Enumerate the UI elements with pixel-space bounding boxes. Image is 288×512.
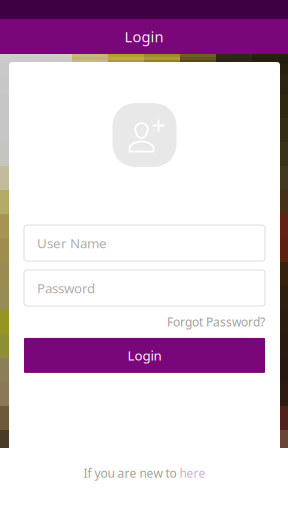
staticText: Login: [127, 347, 161, 364]
staticText: here: [179, 465, 205, 481]
staticText: Login: [124, 27, 163, 46]
staticText: Forgot Password?: [167, 314, 265, 330]
staticText: If you are new to: [83, 465, 176, 481]
staticText: Password: [37, 279, 95, 297]
staticText: User Name: [37, 234, 107, 252]
button[interactable]: Login: [24, 338, 265, 373]
button[interactable]: here: [179, 465, 205, 481]
button[interactable]: Forgot Password?: [167, 311, 265, 333]
